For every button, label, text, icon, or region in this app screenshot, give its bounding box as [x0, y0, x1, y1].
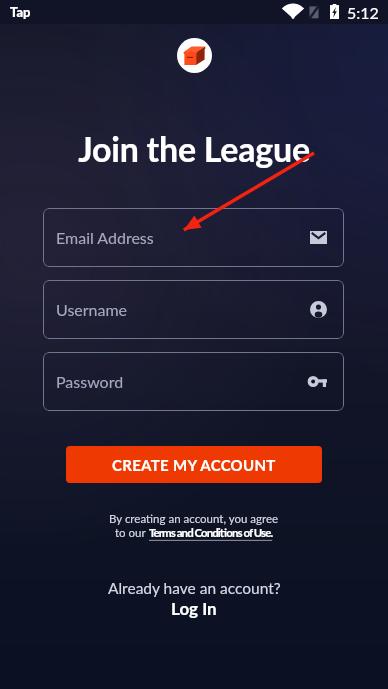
- button[interactable]: Terms and Conditions of Use.: [149, 526, 273, 540]
- staticText: to our: [115, 526, 149, 540]
- button[interactable]: Email Address: [43, 208, 344, 267]
- staticText: CREATE MY ACCOUNT: [112, 456, 276, 474]
- staticText: Join the League: [0, 128, 388, 169]
- staticText: Email Address: [56, 228, 310, 247]
- other: Email: [310, 231, 327, 244]
- button[interactable]: Log In: [171, 598, 217, 618]
- staticText: Already have an account?: [108, 579, 281, 598]
- staticText: 5:12: [347, 3, 379, 22]
- button[interactable]: Password: [43, 352, 344, 411]
- button[interactable]: CREATE MY ACCOUNT: [66, 446, 322, 483]
- other: Password: [308, 376, 327, 387]
- button[interactable]: Username: [43, 280, 344, 339]
- staticText: Password: [56, 372, 308, 391]
- staticText: By creating an account, you agree: [109, 512, 279, 526]
- staticText: Tap: [10, 4, 31, 20]
- other: Username: [310, 301, 327, 318]
- staticText: Username: [56, 300, 310, 319]
